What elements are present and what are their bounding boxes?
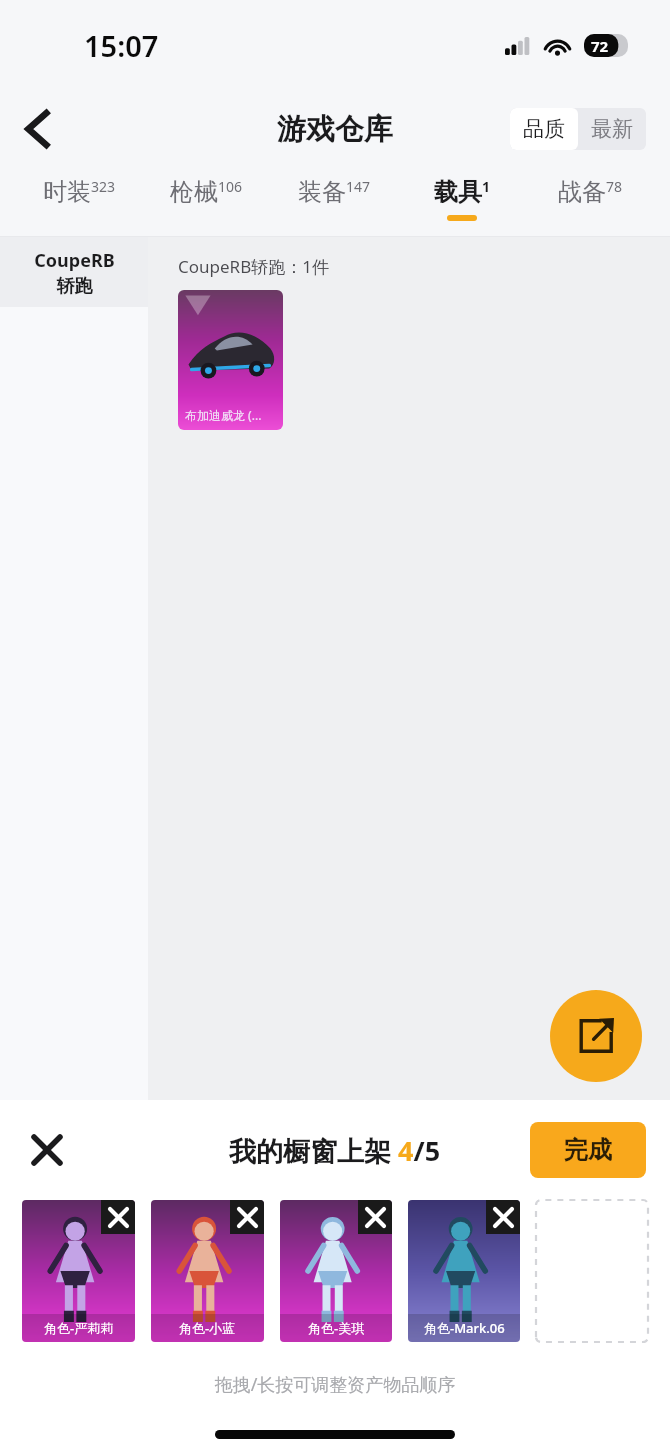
staticText: 布加迪威龙 (... (185, 407, 262, 423)
button[interactable]: 载具 (398, 168, 526, 236)
staticText: 游戏仓库 (277, 111, 393, 148)
staticText: CoupeRB 轿跑 (34, 248, 115, 297)
staticText: 角色-小蓝 (179, 1319, 236, 1337)
button[interactable]: Remove 角色-小蓝 (230, 1200, 264, 1234)
staticText: 78 (606, 177, 623, 196)
button[interactable]: 品质 (510, 108, 578, 150)
staticText: 完成 (564, 1135, 612, 1165)
staticText: 1 (482, 177, 491, 196)
staticText: 106 (218, 177, 243, 196)
staticText: 品质 (523, 116, 565, 142)
staticText: 15:07 (84, 26, 159, 65)
button[interactable]: Close (20, 1123, 74, 1177)
button[interactable]: Share (550, 990, 642, 1082)
button[interactable]: 装备 (270, 168, 398, 236)
button[interactable]: 角色-Mark.06 (408, 1200, 520, 1342)
staticText: 角色-严莉莉 (44, 1319, 114, 1337)
button[interactable]: 枪械 (143, 168, 270, 236)
staticText: 角色-美琪 (308, 1319, 365, 1337)
staticText: 72 (591, 36, 609, 56)
button[interactable]: Remove 角色-Mark.06 (486, 1200, 520, 1234)
staticText: 装备 (298, 177, 346, 207)
button[interactable]: 角色-美琪 (280, 1200, 392, 1342)
button[interactable]: 时装 (16, 168, 143, 236)
button[interactable]: Remove 角色-严莉莉 (101, 1200, 135, 1234)
button[interactable]: Back (10, 101, 66, 157)
staticText: CoupeRB轿跑：1件 (178, 255, 329, 278)
staticText: 战备 (558, 177, 606, 207)
button[interactable]: 布加迪威龙 (... (178, 290, 283, 430)
staticText: 拖拽/长按可调整资产物品顺序 (0, 1372, 670, 1397)
staticText: 最新 (591, 116, 633, 142)
button[interactable]: 完成 (530, 1122, 646, 1178)
staticText: 枪械 (170, 177, 218, 207)
button[interactable]: 角色-严莉莉 (22, 1200, 135, 1342)
staticText: 时装 (43, 177, 91, 207)
staticText: 角色-Mark.06 (424, 1319, 505, 1337)
button[interactable]: 角色-小蓝 (151, 1200, 264, 1342)
button[interactable] (536, 1200, 648, 1342)
button[interactable]: 最新 (578, 108, 646, 150)
button[interactable]: CoupeRB 轿跑 (0, 237, 148, 307)
button[interactable]: 战备 (526, 168, 654, 236)
staticText: 我的橱窗上架 4/5 (229, 1132, 441, 1169)
staticText: 323 (91, 177, 116, 196)
staticText: 载具 (434, 177, 482, 207)
staticText: 147 (346, 177, 371, 196)
button[interactable]: Remove 角色-美琪 (358, 1200, 392, 1234)
